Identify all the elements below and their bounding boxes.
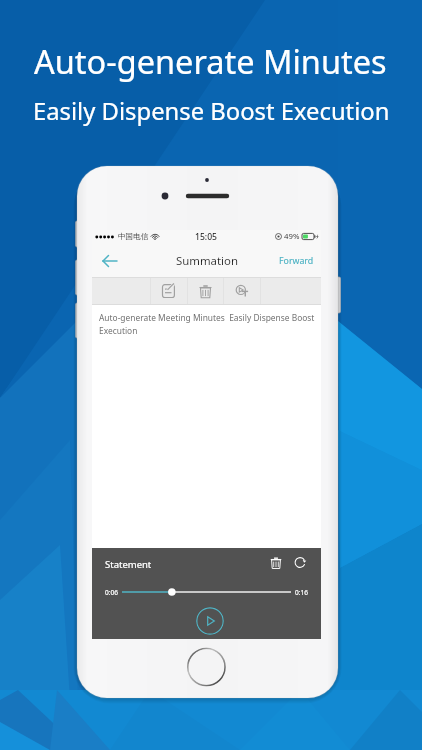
- staticText: Forward: [279, 255, 314, 267]
- staticText: 15:05: [195, 231, 218, 243]
- button[interactable]: Edit: [157, 280, 180, 303]
- button[interactable]: Play: [196, 607, 224, 635]
- button[interactable]: Replay: [290, 553, 310, 573]
- staticText: 中国电信: [118, 232, 149, 242]
- staticText: Auto-generate Minutes: [34, 39, 387, 83]
- button[interactable]: Back: [100, 250, 122, 272]
- staticText: Auto-generate Meeting Minutes Easily Dis…: [99, 312, 315, 337]
- button[interactable]: Delete recording: [266, 553, 286, 573]
- staticText: 0:06: [105, 588, 118, 597]
- button[interactable]: Forward: [277, 251, 316, 271]
- staticText: 0:16: [295, 588, 308, 597]
- staticText: Easily Dispense Boost Execution: [33, 95, 390, 127]
- staticText: Summation: [176, 253, 238, 269]
- staticText: Statement: [105, 558, 152, 571]
- staticText: 49%: [284, 231, 300, 242]
- button[interactable]: Record: [230, 280, 253, 303]
- button[interactable]: Delete: [194, 280, 217, 303]
